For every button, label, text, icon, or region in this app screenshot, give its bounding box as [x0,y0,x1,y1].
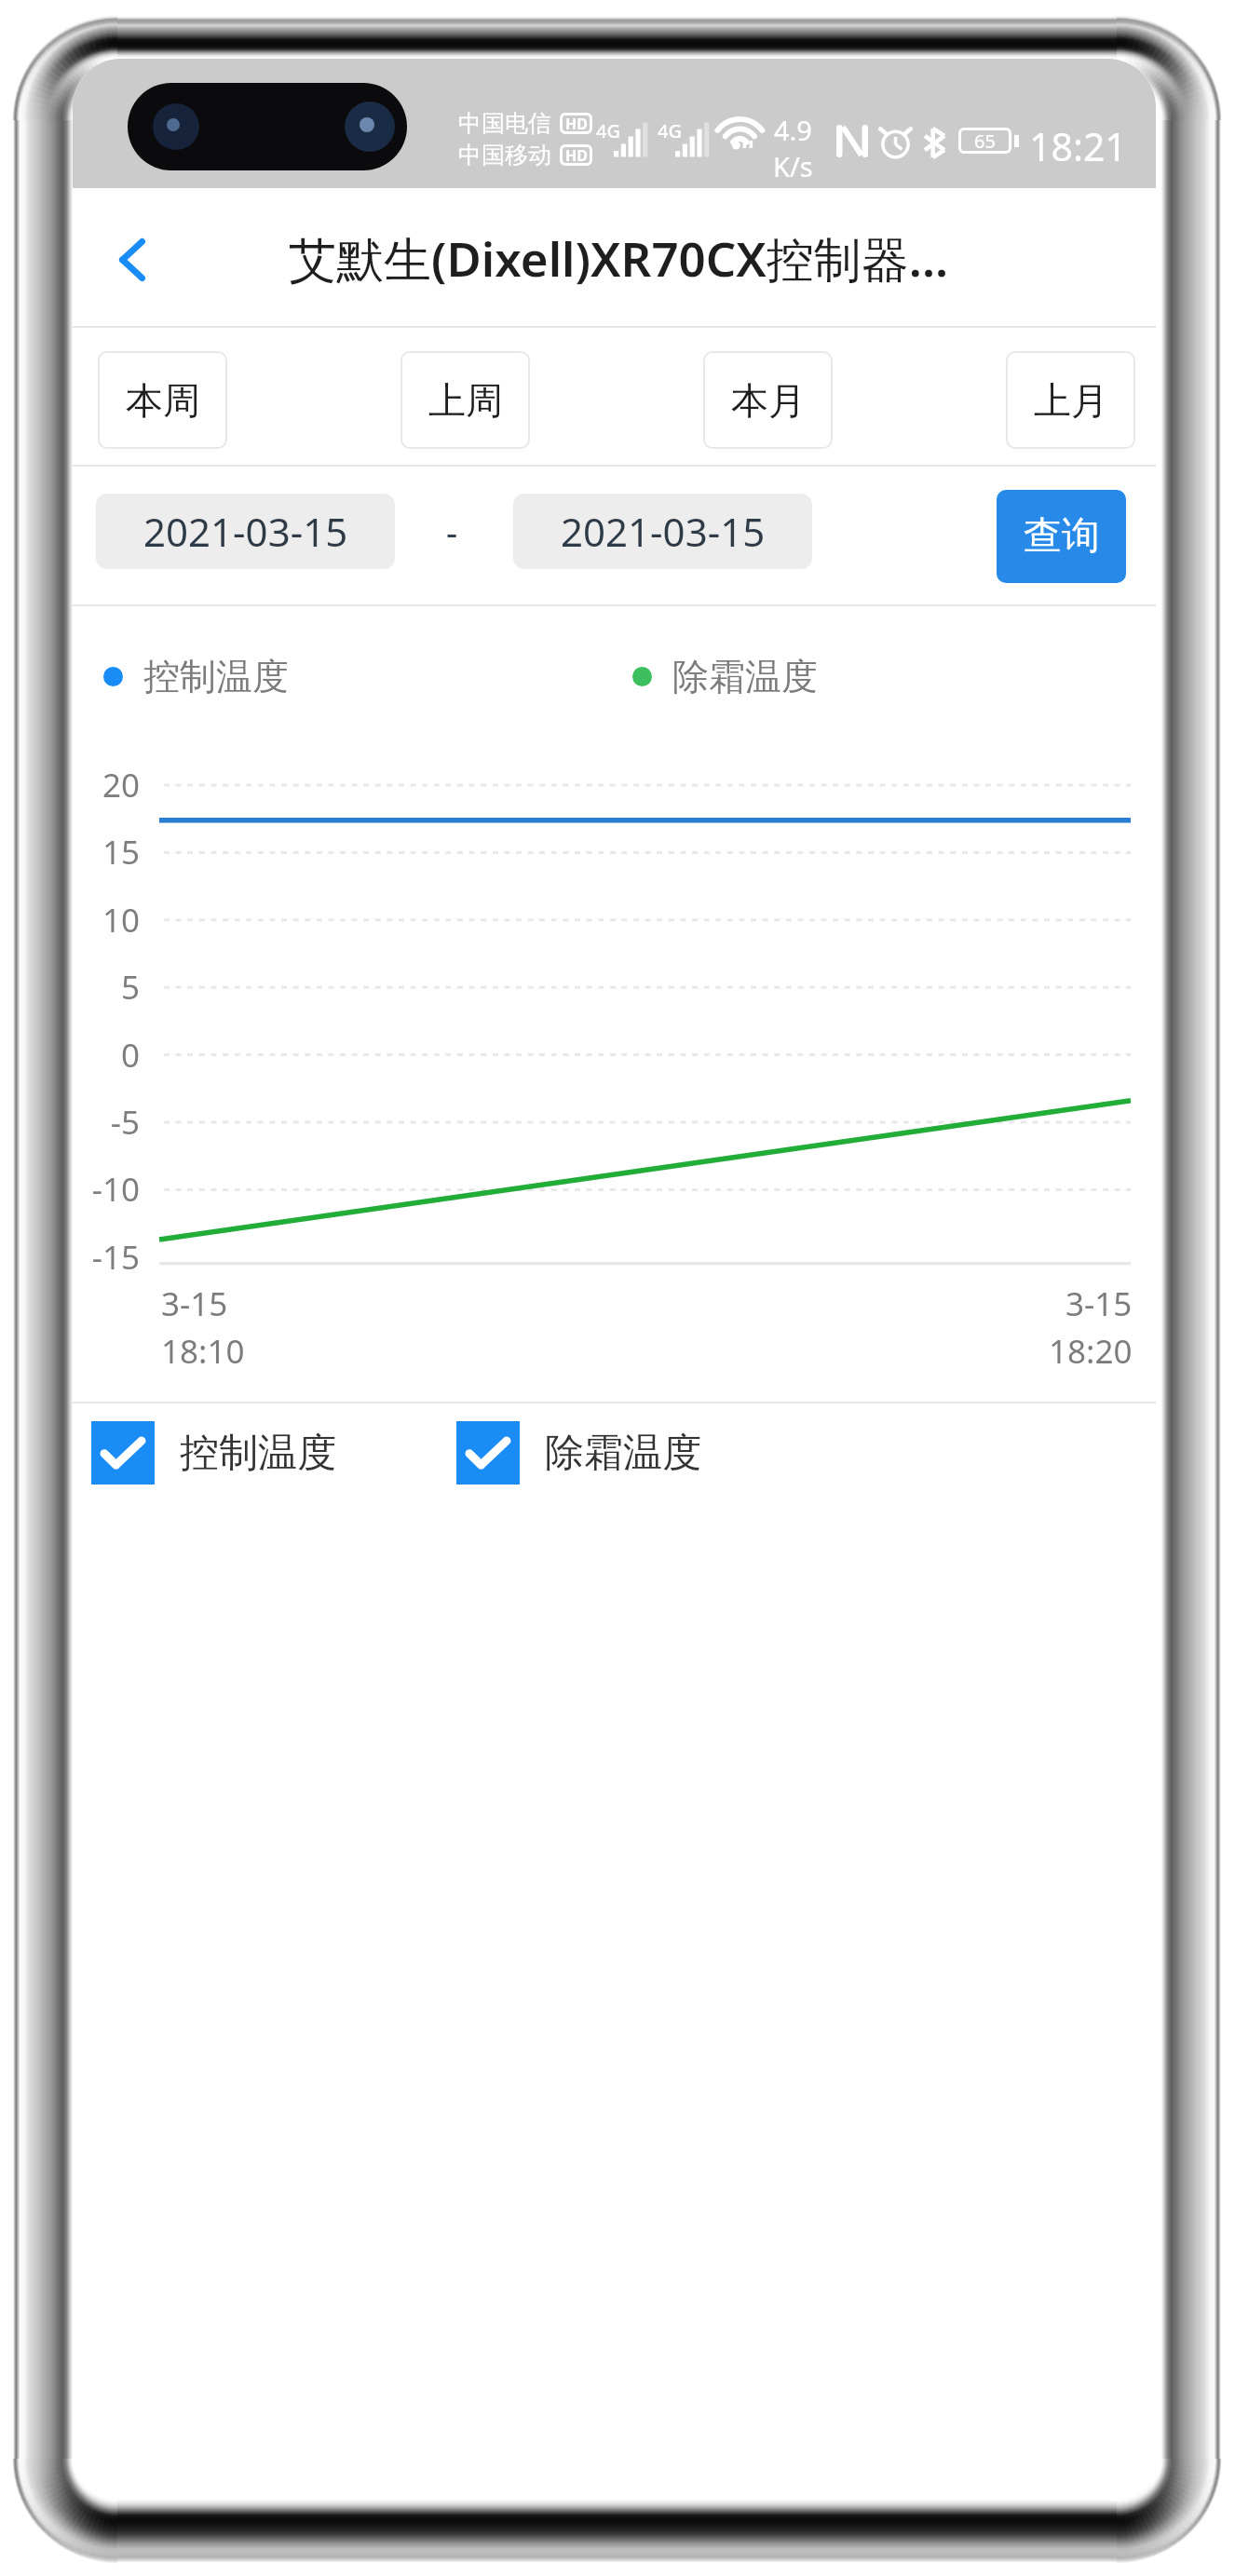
staticText: 2021-03-15 [143,505,348,558]
staticText: 10 [102,898,140,942]
button[interactable]: 本月 [703,351,833,449]
staticText: 上周 [428,377,503,424]
staticText: 中国电信 [458,109,551,138]
button[interactable]: 除霜温度 [456,1421,701,1485]
staticText: -5 [110,1100,140,1145]
button[interactable]: 2021-03-15 [513,494,812,569]
staticText: 本月 [731,377,806,424]
staticText: HD [565,145,588,166]
staticText: HD [565,114,588,134]
staticText: 3-15 [1065,1281,1133,1326]
button[interactable]: 本周 [98,351,227,449]
staticText: 本周 [126,377,200,424]
button[interactable]: 上月 [1006,351,1135,449]
staticText: 控制温度 [143,654,289,699]
staticText: 中国移动 [458,141,551,169]
button[interactable]: 控制温度 [91,1421,336,1485]
staticText: 艾默生(Dixell)XR70CX控制器... [289,225,949,291]
staticText: -15 [91,1235,140,1280]
staticText: 15 [102,830,140,874]
staticText: -10 [91,1167,140,1212]
staticText: 2021-03-15 [561,505,766,558]
staticText: - [446,508,458,556]
staticText: 4G [596,118,620,143]
staticText: 18:21 [1029,120,1127,172]
staticText: 3-15 [161,1281,228,1326]
staticText: K/s [773,148,813,184]
staticText: 20 [102,763,140,807]
staticText: 除霜温度 [672,654,818,699]
staticText: 4G [658,118,682,143]
staticText: 控制温度 [180,1429,336,1478]
staticText: 18:20 [1049,1329,1133,1374]
staticText: 0 [120,1033,140,1078]
button[interactable]: 查询 [997,490,1126,583]
staticText: 除霜温度 [545,1429,701,1478]
staticText: 18:10 [161,1329,245,1374]
staticText: 查询 [1024,512,1100,561]
staticText: 上月 [1034,377,1108,424]
button[interactable]: Back [77,191,187,328]
staticText: 4.9 [774,112,812,148]
button[interactable]: 上周 [400,351,530,449]
button[interactable]: 2021-03-15 [96,494,395,569]
staticText: 5 [120,965,140,1010]
staticText: 65 [974,129,996,154]
